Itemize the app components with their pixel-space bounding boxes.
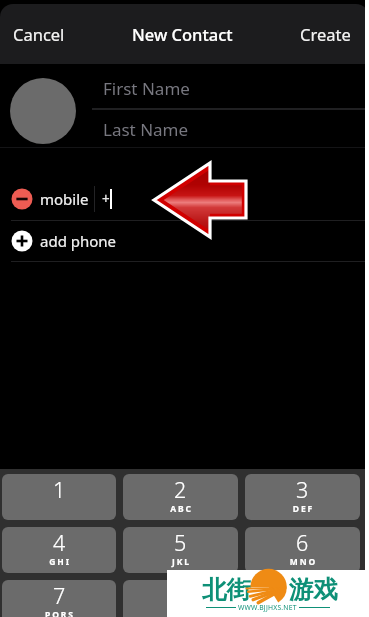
staticText: 6: [296, 528, 309, 557]
button[interactable]: Add photo: [10, 78, 76, 144]
button[interactable]: 5: [123, 527, 238, 573]
button[interactable]: 2: [123, 474, 238, 520]
button[interactable]: add phone: [0, 220, 369, 262]
staticText: TUV: [124, 609, 238, 617]
staticText: mobile: [40, 189, 89, 209]
button[interactable]: 7: [2, 580, 116, 617]
staticText: WXYZ: [246, 609, 360, 617]
button[interactable]: First Name: [92, 66, 369, 110]
staticText: 9: [296, 581, 309, 610]
staticText: 4: [53, 528, 66, 557]
staticText: 3: [296, 475, 309, 504]
staticText: Last Name: [103, 118, 189, 141]
button[interactable]: 4: [2, 527, 116, 573]
button[interactable]: 9: [245, 580, 360, 617]
button[interactable]: Create: [291, 15, 360, 53]
staticText: PQRS: [3, 609, 116, 617]
button[interactable]: 6: [245, 527, 360, 573]
staticText: GHI: [3, 556, 116, 568]
staticText: 5: [174, 528, 187, 557]
staticText: ABC: [124, 503, 238, 515]
staticText: WWW.BJJHXS.NET: [238, 603, 297, 612]
staticText: +: [102, 190, 110, 208]
staticText: 7: [53, 581, 66, 610]
staticText: DEF: [246, 503, 360, 515]
button[interactable]: mobile: [0, 178, 369, 220]
staticText: add phone: [40, 231, 117, 251]
staticText: First Name: [103, 77, 190, 100]
staticText: MNO: [246, 556, 360, 568]
button[interactable]: 1: [2, 474, 116, 520]
staticText: Create: [300, 23, 351, 45]
staticText: 北街: [202, 574, 251, 605]
staticText: 1: [53, 475, 66, 504]
staticText: Cancel: [13, 23, 65, 45]
staticText: New Contact: [132, 23, 233, 45]
button[interactable]: 8: [123, 580, 238, 617]
button[interactable]: 3: [245, 474, 360, 520]
staticText: 2: [174, 475, 187, 504]
staticText: JKL: [124, 556, 238, 568]
staticText: 游戏: [289, 574, 338, 605]
button[interactable]: Cancel: [4, 15, 74, 53]
button[interactable]: Last Name: [92, 111, 369, 147]
